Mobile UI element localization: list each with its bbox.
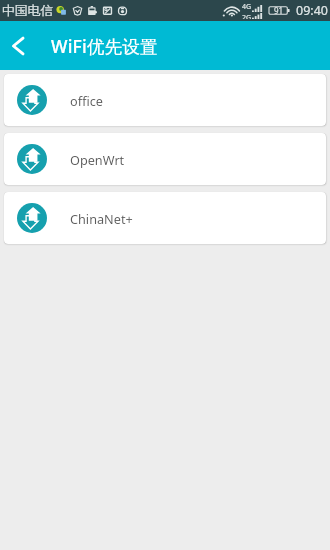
button[interactable]: office [4,74,326,126]
staticText: 4G [242,2,252,12]
button[interactable]: Back [0,28,36,64]
staticText: 中国电信 [2,3,54,19]
staticText: WiFi优先设置 [51,34,158,58]
staticText: 09:40 [296,2,328,19]
staticText: OpenWrt [70,151,125,168]
staticText: ChinaNet+ [70,210,133,227]
button[interactable]: OpenWrt [4,133,326,185]
staticText: office [70,92,103,109]
staticText: 91 [274,5,284,16]
button[interactable]: ChinaNet+ [4,192,326,244]
staticText: 2G [242,13,252,19]
